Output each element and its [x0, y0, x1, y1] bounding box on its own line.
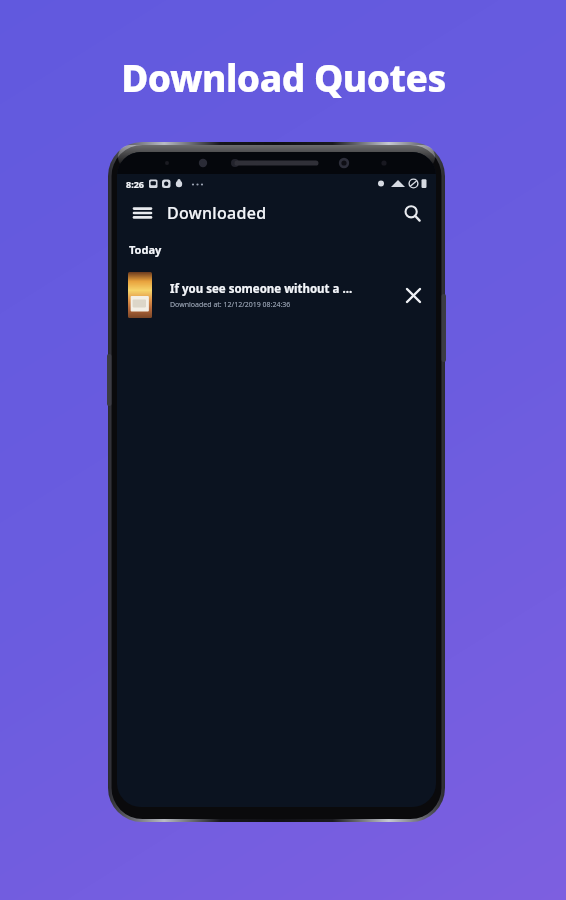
staticText: Downloaded at: 12/12/2019 08:24:36 — [170, 300, 291, 310]
button[interactable]: If you see someone without a ... — [117, 267, 436, 323]
button[interactable]: Remove download — [396, 278, 430, 312]
button[interactable]: Open navigation menu — [125, 196, 159, 230]
staticText: Downloaded — [167, 202, 267, 224]
staticText: Today — [129, 242, 162, 257]
button[interactable]: Search — [392, 193, 432, 233]
staticText: Download Quotes — [121, 52, 446, 102]
staticText: If you see someone without a ... — [170, 281, 353, 297]
staticText: 8:26 — [126, 178, 144, 190]
